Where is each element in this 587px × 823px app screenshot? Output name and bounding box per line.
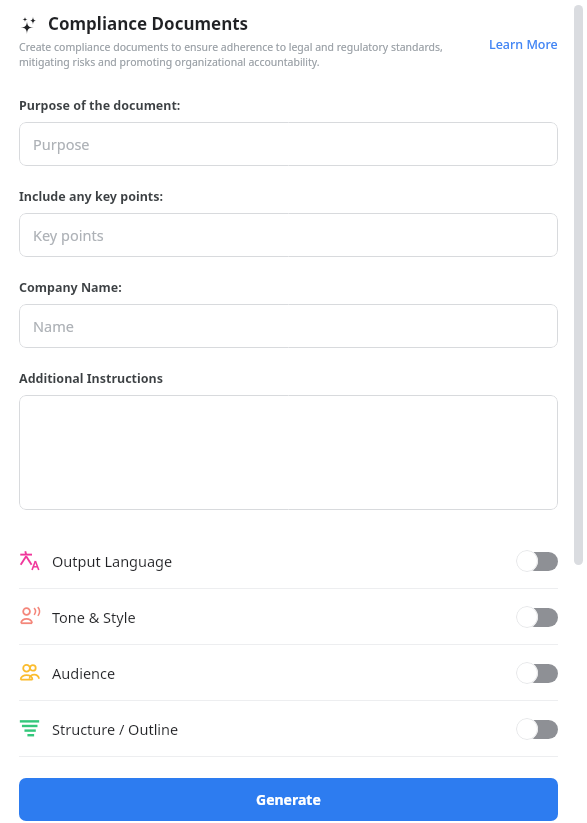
button[interactable]: Learn More bbox=[489, 36, 558, 53]
button[interactable]: Toggle Structure / Outline bbox=[516, 717, 558, 741]
staticText: Include any key points: bbox=[19, 188, 164, 205]
staticText: Company Name: bbox=[19, 279, 122, 296]
button[interactable]: Key points bbox=[19, 213, 558, 257]
staticText: Purpose bbox=[33, 134, 90, 154]
staticText: Additional Instructions bbox=[19, 370, 163, 387]
button[interactable]: Name bbox=[19, 304, 558, 348]
staticText: Learn More bbox=[489, 36, 558, 53]
button[interactable]: Toggle Audience bbox=[516, 661, 558, 685]
button[interactable]: Toggle Output Language bbox=[516, 549, 558, 573]
button[interactable]: Toggle Tone & Style bbox=[516, 605, 558, 629]
button[interactable]: Purpose bbox=[19, 122, 558, 166]
button[interactable]: Tone & Style bbox=[19, 589, 558, 644]
button[interactable]: Audience bbox=[19, 645, 558, 700]
button[interactable]: Generate bbox=[19, 778, 558, 821]
button[interactable]: Output Language bbox=[19, 533, 558, 588]
staticText: Key points bbox=[33, 225, 104, 245]
staticText: Structure / Outline bbox=[52, 719, 179, 739]
staticText: Name bbox=[33, 316, 74, 336]
staticText: Purpose of the document: bbox=[19, 97, 181, 114]
staticText: Compliance Documents bbox=[48, 12, 249, 35]
staticText: Create compliance documents to ensure ad… bbox=[19, 40, 481, 69]
staticText: Output Language bbox=[52, 551, 173, 571]
button[interactable] bbox=[19, 395, 558, 510]
button[interactable]: Structure / Outline bbox=[19, 701, 558, 756]
staticText: Audience bbox=[52, 663, 116, 683]
staticText: Generate bbox=[256, 790, 321, 809]
staticText: Tone & Style bbox=[52, 607, 136, 627]
